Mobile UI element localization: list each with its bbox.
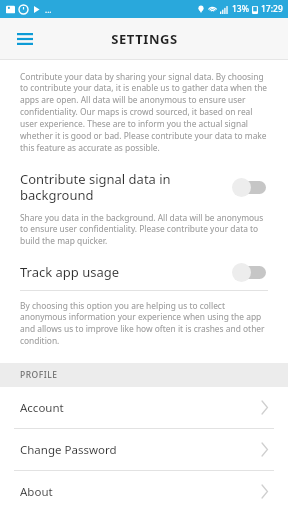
button[interactable]: Track app usage (0, 260, 288, 284)
staticText: 17:29 (261, 3, 283, 15)
staticText: ... (45, 4, 52, 15)
staticText: By choosing this option you are helping … (20, 300, 268, 347)
button[interactable]: Change Password (0, 429, 288, 470)
button[interactable]: Open navigation menu (10, 24, 40, 54)
staticText: Contribute signal data in background (20, 170, 224, 203)
staticText: Account (20, 400, 261, 416)
staticText: About (20, 484, 261, 500)
staticText: Contribute your data by sharing your sig… (20, 71, 268, 154)
button[interactable]: Account (0, 387, 288, 428)
button[interactable]: Contribute signal data in background (0, 168, 288, 205)
staticText: SETTINGS (111, 30, 178, 48)
staticText: Share you data in the background. All da… (20, 212, 268, 247)
staticText: 13% (232, 3, 249, 15)
button[interactable]: About (0, 471, 288, 512)
staticText: PROFILE (20, 369, 58, 381)
staticText: Change Password (20, 442, 261, 458)
staticText: Track app usage (20, 263, 224, 281)
